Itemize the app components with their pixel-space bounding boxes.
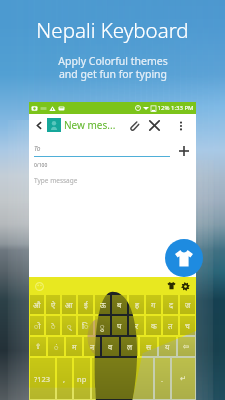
staticText: ऐ: [51, 300, 56, 310]
button[interactable]: ब: [112, 295, 127, 314]
button[interactable]: द: [163, 295, 178, 314]
staticText: े: [51, 321, 56, 331]
button[interactable]: np: [74, 358, 90, 399]
staticText: New mes...: [64, 118, 116, 132]
staticText: ं: [54, 342, 59, 352]
button[interactable]: ज: [180, 295, 195, 314]
button[interactable]: ं: [48, 337, 64, 356]
button[interactable]: Theme: [165, 279, 178, 292]
button[interactable]: Emoji: [33, 280, 45, 292]
staticText: क: [151, 321, 157, 331]
button[interactable]: प: [112, 316, 127, 335]
staticText: Type message: [34, 176, 78, 185]
staticText: र: [135, 321, 139, 331]
button[interactable]: र: [129, 316, 144, 335]
button[interactable]: ⇦: [178, 337, 195, 356]
button[interactable]: ई: [78, 295, 93, 314]
button[interactable]: क: [146, 316, 161, 335]
button[interactable]: त: [163, 316, 178, 335]
staticText: य: [165, 342, 170, 352]
button[interactable]: ⇧: [30, 337, 46, 356]
staticText: ज: [185, 300, 191, 310]
staticText: व: [108, 342, 113, 352]
button[interactable]: .: [155, 358, 170, 399]
staticText: प: [117, 321, 122, 331]
staticText: 0/100: [34, 162, 48, 169]
staticText: ↵: [180, 374, 187, 383]
button[interactable]: ो: [30, 316, 44, 335]
button[interactable]: ्: [62, 316, 76, 335]
button[interactable]: स: [140, 337, 157, 356]
button[interactable]: न: [84, 337, 100, 356]
staticText: स: [146, 342, 152, 352]
button[interactable]: ↵: [172, 358, 195, 399]
staticText: .: [161, 374, 164, 384]
staticText: द: [169, 300, 173, 310]
button[interactable]: Attach: [125, 117, 141, 133]
button[interactable]: Add recipient: [176, 143, 191, 158]
staticText: आ: [65, 300, 73, 310]
button[interactable]: े: [46, 316, 60, 335]
button[interactable]: म: [66, 337, 82, 356]
button[interactable]: More options: [174, 119, 187, 132]
staticText: ग: [151, 300, 156, 310]
button[interactable]: व: [102, 337, 119, 356]
staticText: ्: [67, 321, 72, 331]
button[interactable]: ?123: [30, 358, 55, 399]
button[interactable]: य: [159, 337, 176, 356]
staticText: To: [34, 144, 41, 153]
staticText: न: [90, 342, 95, 352]
staticText: Nepali Keyboard: [36, 16, 189, 44]
staticText: ऊ: [100, 300, 106, 310]
staticText: ⇦: [183, 342, 190, 351]
staticText: ो: [34, 321, 41, 331]
button[interactable]: Themes: [165, 239, 203, 277]
staticText: म: [72, 342, 77, 352]
button[interactable]: ु: [95, 316, 110, 335]
button[interactable]: Close: [146, 117, 163, 134]
button[interactable]: औ: [30, 295, 44, 314]
button[interactable]: ि: [78, 316, 93, 335]
button[interactable]: ऊ: [95, 295, 110, 314]
button[interactable]: ल: [121, 337, 138, 356]
button[interactable]: ग: [146, 295, 161, 314]
staticText: np: [77, 374, 87, 384]
button[interactable]: ,: [57, 358, 72, 399]
button[interactable]: ह: [129, 295, 144, 314]
staticText: ,: [63, 374, 66, 384]
staticText: च: [185, 321, 190, 331]
button[interactable]: Settings: [178, 279, 192, 293]
staticText: त: [168, 321, 173, 331]
button[interactable]: [92, 358, 153, 399]
staticText: ई: [84, 300, 88, 310]
staticText: ⇧: [35, 342, 42, 351]
button[interactable]: ऐ: [46, 295, 60, 314]
button[interactable]: च: [180, 316, 195, 335]
button[interactable]: आ: [62, 295, 76, 314]
staticText: ि: [82, 321, 89, 331]
staticText: 12% 1:33 PM: [156, 104, 194, 112]
staticText: Apply Colorful themes and get fun for ty…: [58, 54, 168, 81]
staticText: ?123: [34, 374, 51, 384]
staticText: ब: [117, 300, 122, 310]
staticText: औ: [33, 300, 41, 310]
button[interactable]: Back: [32, 118, 46, 132]
staticText: ु: [100, 321, 105, 331]
staticText: ल: [127, 342, 133, 352]
staticText: ह: [135, 300, 139, 310]
